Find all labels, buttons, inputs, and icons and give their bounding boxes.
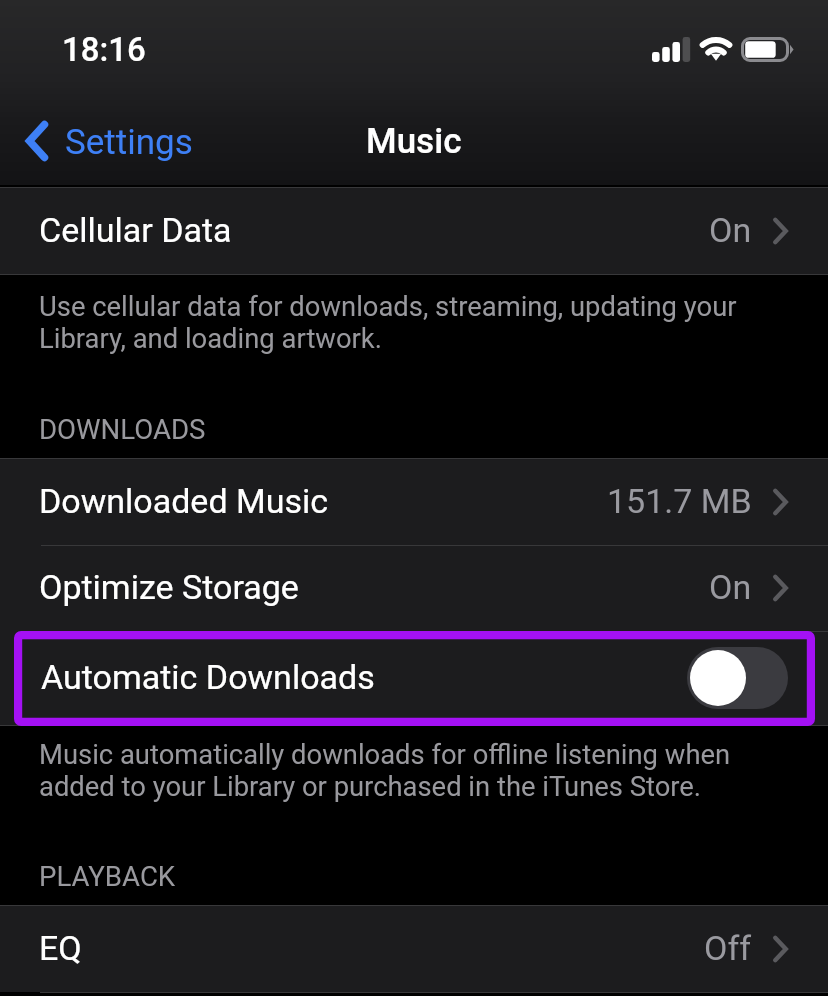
staticText: PLAYBACK — [39, 860, 176, 892]
staticText: Automatic Downloads — [41, 657, 375, 697]
button[interactable]: Automatic Downloads — [0, 631, 828, 725]
staticText: Cellular Data — [39, 210, 232, 250]
staticText: On — [709, 210, 752, 250]
staticText: Use cellular data for downloads, streami… — [39, 291, 737, 323]
staticText: On — [709, 567, 752, 607]
staticText: EQ — [39, 928, 82, 968]
staticText: DOWNLOADS — [39, 413, 206, 445]
staticText: Music — [366, 121, 462, 162]
button[interactable]: EQ — [0, 906, 828, 992]
staticText: Library, and loading artwork. — [39, 323, 382, 355]
staticText: Downloaded Music — [39, 481, 329, 521]
staticText: 151.7 MB — [607, 481, 752, 521]
staticText: Off — [704, 928, 752, 968]
staticText: Music automatically downloads for offlin… — [39, 739, 731, 771]
button[interactable]: Optimize Storage — [0, 545, 828, 631]
staticText: added to your Library or purchased in th… — [39, 771, 702, 803]
button[interactable]: Downloaded Music — [0, 459, 828, 545]
staticText: Settings — [65, 122, 193, 163]
button[interactable]: Cellular Data — [0, 188, 828, 274]
button[interactable]: Settings — [22, 116, 197, 165]
staticText: Optimize Storage — [39, 567, 299, 607]
staticText: 18:16 — [62, 30, 146, 69]
button[interactable]: Automatic Downloads switch, off — [687, 647, 788, 709]
